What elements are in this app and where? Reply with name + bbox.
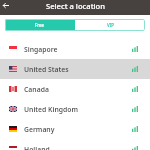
button[interactable]: Back: [0, 0, 11, 11]
button[interactable]: United States: [0, 59, 150, 79]
button[interactable]: VIP: [75, 19, 145, 31]
staticText: Free: [35, 22, 45, 28]
staticText: Canada: [24, 85, 49, 94]
staticText: Germany: [24, 125, 55, 134]
button[interactable]: United Kingdom: [0, 99, 150, 119]
staticText: United States: [24, 65, 69, 74]
staticText: United Kingdom: [24, 105, 78, 114]
button[interactable]: Germany: [0, 119, 150, 139]
staticText: Singapore: [24, 45, 58, 54]
button[interactable]: Singapore: [0, 39, 150, 59]
button[interactable]: Holland: [0, 139, 150, 150]
staticText: Select a location: [46, 1, 105, 11]
button[interactable]: Free: [5, 19, 75, 31]
staticText: Holland: [24, 145, 50, 150]
button[interactable]: Canada: [0, 79, 150, 99]
staticText: VIP: [107, 22, 114, 28]
